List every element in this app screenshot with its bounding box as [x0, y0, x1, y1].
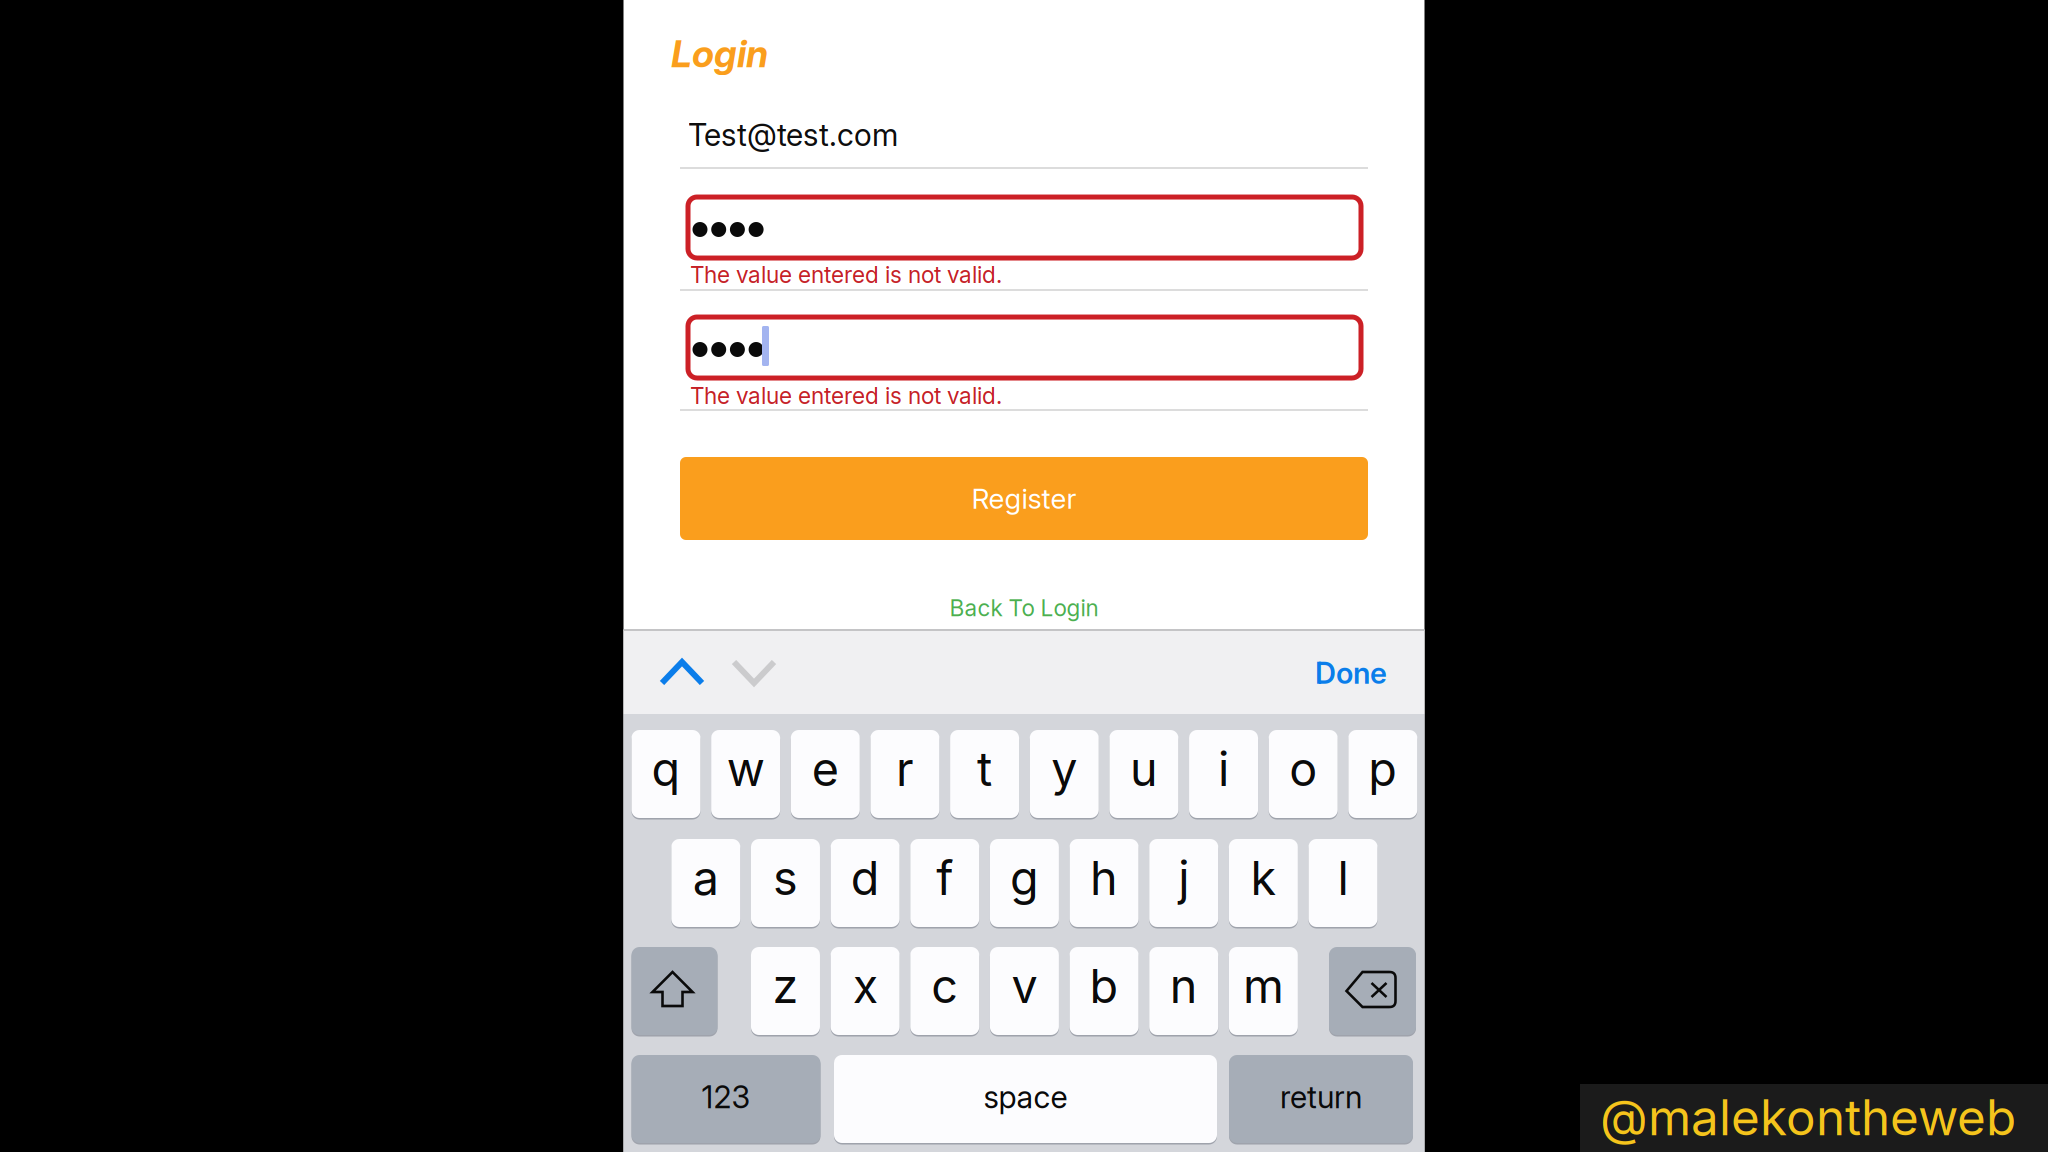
- staticText: q: [651, 741, 680, 797]
- staticText: z: [772, 958, 798, 1014]
- staticText: The value entered is not valid.: [690, 261, 1002, 288]
- button[interactable]: t: [950, 728, 1019, 819]
- button[interactable]: z: [751, 945, 820, 1036]
- button[interactable]: s: [751, 837, 820, 928]
- button[interactable]: Previous field: [650, 640, 714, 704]
- staticText: b: [1090, 958, 1119, 1014]
- staticText: c: [931, 958, 958, 1014]
- button[interactable]: 123: [631, 1053, 820, 1144]
- staticText: w: [727, 741, 765, 797]
- button[interactable]: space: [834, 1053, 1217, 1144]
- staticText: d: [851, 850, 880, 906]
- staticText: o: [1289, 741, 1317, 797]
- staticText: Test@test.com: [688, 116, 898, 153]
- button[interactable]: c: [910, 945, 979, 1036]
- staticText: p: [1368, 741, 1397, 797]
- button[interactable]: Register: [680, 457, 1368, 540]
- staticText: @malekontheweb: [1600, 1087, 2016, 1147]
- staticText: j: [1178, 850, 1189, 906]
- staticText: x: [853, 958, 878, 1014]
- button[interactable]: p: [1348, 728, 1417, 819]
- button[interactable]: b: [1070, 945, 1139, 1036]
- button[interactable]: q: [631, 728, 700, 819]
- button[interactable]: return: [1229, 1053, 1413, 1144]
- button[interactable]: k: [1229, 837, 1298, 928]
- button[interactable]: h: [1070, 837, 1139, 928]
- button[interactable]: u: [1109, 728, 1178, 819]
- staticText: The value entered is not valid.: [690, 382, 1002, 409]
- staticText: Login: [671, 31, 768, 76]
- staticText: k: [1250, 850, 1276, 906]
- staticText: m: [1243, 958, 1284, 1014]
- button[interactable]: Next field: [722, 640, 786, 704]
- button[interactable]: Back To Login: [864, 583, 1184, 633]
- staticText: g: [1010, 850, 1039, 906]
- staticText: u: [1130, 741, 1158, 797]
- button[interactable]: l: [1308, 837, 1377, 928]
- button[interactable]: v: [990, 945, 1059, 1036]
- button[interactable]: w: [711, 728, 780, 819]
- button[interactable]: n: [1149, 945, 1218, 1036]
- staticText: n: [1170, 958, 1198, 1014]
- button[interactable]: g: [990, 837, 1059, 928]
- staticText: space: [983, 1078, 1067, 1115]
- staticText: e: [812, 741, 839, 797]
- button[interactable]: a: [671, 837, 740, 928]
- staticText: f: [936, 850, 953, 906]
- staticText: y: [1051, 741, 1077, 797]
- button[interactable]: j: [1149, 837, 1218, 928]
- button[interactable]: e: [791, 728, 860, 819]
- staticText: v: [1011, 958, 1037, 1014]
- staticText: Back To Login: [949, 594, 1098, 622]
- button[interactable]: d: [831, 837, 900, 928]
- button[interactable]: Shift: [631, 945, 717, 1036]
- button[interactable]: o: [1269, 728, 1338, 819]
- staticText: 123: [701, 1078, 750, 1115]
- staticText: r: [896, 741, 914, 797]
- staticText: l: [1337, 850, 1348, 906]
- staticText: h: [1090, 850, 1118, 906]
- button[interactable]: y: [1030, 728, 1099, 819]
- staticText: t: [977, 741, 992, 797]
- staticText: Register: [971, 482, 1076, 515]
- button[interactable]: i: [1189, 728, 1258, 819]
- button[interactable]: x: [831, 945, 900, 1036]
- button[interactable]: Done: [1291, 641, 1411, 705]
- button[interactable]: f: [910, 837, 979, 928]
- staticText: a: [693, 850, 719, 906]
- button[interactable]: r: [870, 728, 939, 819]
- button[interactable]: m: [1229, 945, 1298, 1036]
- staticText: s: [773, 850, 798, 906]
- staticText: Done: [1315, 655, 1387, 691]
- staticText: return: [1280, 1078, 1362, 1115]
- staticText: i: [1218, 741, 1229, 797]
- button[interactable]: Delete: [1329, 945, 1416, 1036]
